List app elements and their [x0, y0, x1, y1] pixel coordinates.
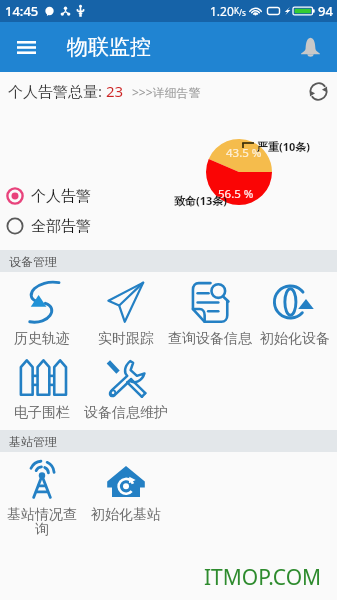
- staticText: 个人告警总量:: [8, 81, 103, 101]
- button[interactable]: 初始化基站: [84, 452, 168, 547]
- button[interactable]: 初始化设备: [252, 272, 337, 350]
- button[interactable]: Refresh: [303, 76, 333, 106]
- staticText: 设备信息维护: [84, 404, 168, 422]
- staticText: 历史轨迹: [14, 330, 70, 348]
- button[interactable]: 全部告警: [0, 211, 337, 241]
- staticText: ITMOP.COM: [204, 563, 322, 592]
- staticText: 严重(10条): [257, 139, 311, 154]
- button[interactable]: Notifications: [288, 25, 332, 69]
- button[interactable]: 实时跟踪: [84, 272, 168, 350]
- staticText: 查询设备信息: [168, 330, 252, 348]
- staticText: 23: [106, 81, 124, 101]
- button[interactable]: 查询设备信息: [168, 272, 252, 350]
- staticText: 全部告警: [31, 217, 91, 236]
- button[interactable]: 电子围栏: [0, 350, 84, 430]
- staticText: 基站情况查 询: [7, 506, 77, 538]
- staticText: 1.20: [210, 3, 234, 19]
- button[interactable]: 历史轨迹: [0, 272, 84, 350]
- staticText: 致命(13条): [174, 193, 228, 208]
- staticText: K: [234, 5, 239, 16]
- staticText: 电子围栏: [14, 404, 70, 422]
- button[interactable]: 基站情况查 询: [0, 452, 84, 547]
- staticText: 设备管理: [9, 254, 57, 269]
- staticText: 94: [318, 2, 333, 20]
- staticText: 14:45: [5, 2, 39, 20]
- staticText: >>>详细告警: [132, 84, 201, 100]
- button[interactable]: 个人告警: [0, 181, 337, 211]
- staticText: /s: [239, 7, 246, 18]
- button[interactable]: Menu: [2, 23, 50, 71]
- staticText: 56.5 %: [218, 186, 254, 202]
- staticText: 实时跟踪: [98, 330, 154, 348]
- staticText: 基站管理: [9, 434, 57, 449]
- staticText: 43.5 %: [226, 145, 262, 161]
- button[interactable]: >>>详细告警: [132, 84, 201, 101]
- button[interactable]: 设备信息维护: [84, 350, 168, 430]
- staticText: 初始化基站: [91, 506, 161, 524]
- staticText: 物联监控: [67, 34, 151, 60]
- staticText: 初始化设备: [260, 330, 330, 348]
- staticText: 个人告警: [31, 187, 91, 206]
